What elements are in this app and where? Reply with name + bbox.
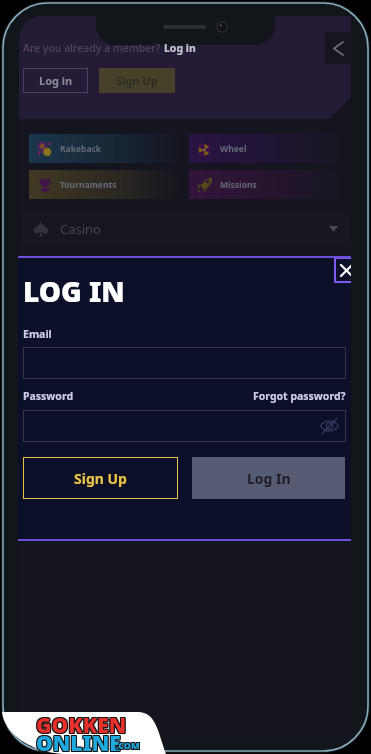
staticText: ONLINE: [36, 729, 121, 754]
button[interactable]: Casino: [22, 212, 349, 245]
staticText: .COM: [115, 740, 139, 752]
staticText: ONLINE: [36, 728, 121, 754]
staticText: Log In: [247, 469, 291, 488]
staticText: GOKKEN: [35, 710, 126, 739]
staticText: .COM: [117, 738, 141, 750]
button[interactable]: Show password: [317, 414, 341, 438]
button[interactable]: Back: [325, 32, 352, 64]
button[interactable]: Sign Up: [23, 457, 178, 499]
button[interactable]: Tournaments: [29, 170, 179, 199]
staticText: .COM: [117, 740, 141, 752]
staticText: .COM: [116, 738, 140, 750]
staticText: GOKKEN: [37, 711, 128, 740]
button[interactable]: Rakeback: [29, 134, 179, 163]
staticText: .COM: [115, 738, 139, 750]
staticText: Wheel: [220, 143, 247, 155]
button[interactable]: Sign Up: [99, 68, 175, 93]
staticText: Casino: [60, 220, 101, 238]
staticText: LOG IN: [23, 272, 125, 310]
staticText: ONLINE: [35, 728, 120, 754]
staticText: ONLINE: [35, 729, 120, 754]
staticText: Email: [23, 327, 52, 341]
staticText: ONLINE: [37, 730, 122, 754]
staticText: Tournaments: [60, 179, 117, 191]
staticText: .COM: [116, 740, 140, 752]
button[interactable]: Wheel: [189, 134, 340, 163]
staticText: ONLINE: [37, 729, 122, 754]
button[interactable]: Close: [334, 258, 351, 283]
staticText: Log in: [39, 73, 73, 88]
staticText: GOKKEN: [35, 711, 126, 740]
staticText: Missions: [220, 179, 257, 191]
staticText: ONLINE: [35, 730, 120, 754]
staticText: Password: [23, 389, 74, 403]
button[interactable]: Forgot password?: [253, 389, 346, 403]
staticText: GOKKEN: [36, 712, 127, 741]
staticText: ONLINE: [37, 728, 122, 754]
staticText: GOKKEN: [35, 712, 126, 741]
staticText: .COM: [115, 739, 139, 751]
button[interactable]: Log in: [23, 68, 88, 93]
staticText: GOKKEN: [36, 711, 127, 740]
button[interactable]: Missions: [189, 170, 340, 199]
button[interactable]: Log In: [192, 457, 345, 499]
staticText: ONLINE: [36, 730, 121, 754]
staticText: GOKKEN: [36, 710, 127, 739]
staticText: Rakeback: [60, 143, 102, 155]
staticText: .COM: [116, 739, 140, 751]
button[interactable]: Log in: [164, 41, 196, 55]
staticText: GOKKEN: [37, 710, 128, 739]
staticText: Are you already a member?: [23, 41, 164, 55]
staticText: Sign Up: [74, 469, 127, 488]
staticText: .COM: [117, 739, 141, 751]
button[interactable]: [23, 347, 346, 379]
staticText: GOKKEN: [37, 712, 128, 741]
staticText: Sign Up: [116, 73, 158, 88]
